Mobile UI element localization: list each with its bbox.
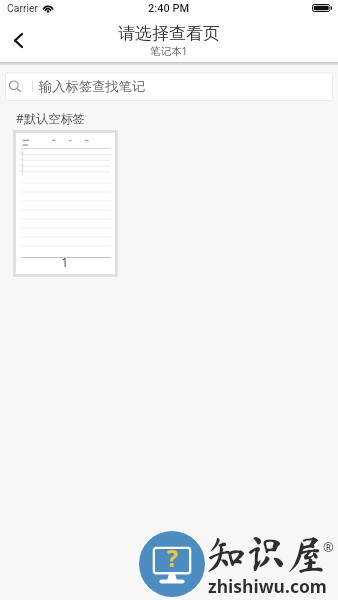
- staticText: ?: [167, 542, 178, 573]
- staticText: 输入标签查找笔记: [39, 78, 146, 95]
- button[interactable]: 1: [13, 130, 118, 277]
- staticText: Carrier: [7, 2, 39, 14]
- staticText: 1: [61, 253, 69, 271]
- staticText: #默认空标签: [16, 110, 85, 127]
- staticText: 知识屋: [206, 534, 326, 574]
- button[interactable]: 输入标签查找笔记: [5, 72, 333, 101]
- button[interactable]: Back: [2, 24, 34, 56]
- staticText: 请选择查看页: [118, 23, 220, 44]
- staticText: 笔记本1: [150, 44, 188, 58]
- staticText: zhishiwu.com: [208, 574, 327, 598]
- staticText: ®: [323, 538, 334, 556]
- staticText: 2:40 PM: [148, 2, 190, 15]
